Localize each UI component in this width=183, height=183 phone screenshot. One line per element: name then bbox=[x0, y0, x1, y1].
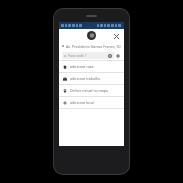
staticText: adicionar casa bbox=[70, 64, 121, 69]
button[interactable]: Para onde ? bbox=[62, 52, 114, 59]
staticText: adicionar trabalho bbox=[70, 76, 121, 81]
button[interactable]: adicionar local bbox=[59, 97, 124, 108]
staticText: adicionar local bbox=[70, 100, 121, 105]
button[interactable]: Settings bbox=[107, 53, 112, 58]
button[interactable]: Definir virtual no mapa bbox=[59, 85, 124, 96]
staticText: Definir virtual no mapa bbox=[70, 88, 121, 93]
staticText: Av. Presidente Itamar Franco, 50 bbox=[66, 44, 121, 49]
button[interactable]: adicionar trabalho bbox=[59, 73, 124, 84]
button[interactable]: adicionar casa bbox=[59, 61, 124, 72]
button[interactable]: Add stop bbox=[114, 52, 121, 59]
button[interactable]: Close bbox=[112, 32, 120, 40]
button[interactable]: Profile bbox=[87, 31, 96, 40]
button[interactable]: Av. Presidente Itamar Franco, 50 bbox=[59, 42, 124, 50]
staticText: Para onde ? bbox=[68, 53, 107, 58]
